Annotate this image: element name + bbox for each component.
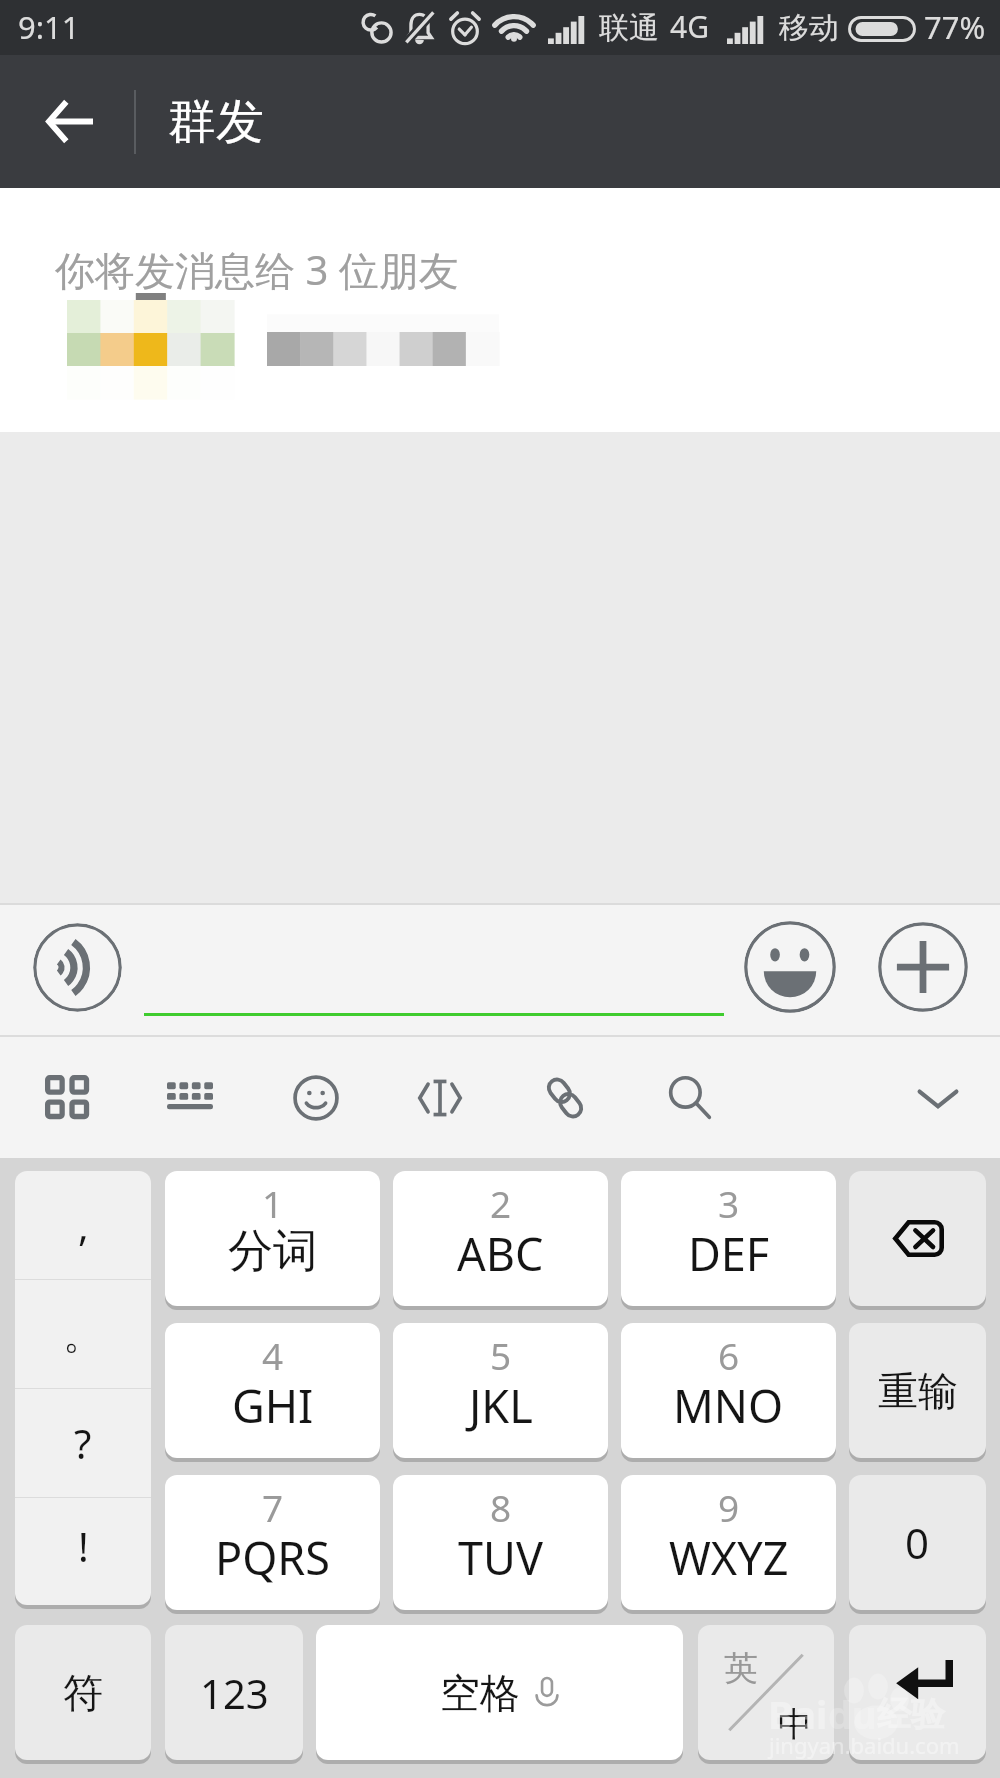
staticText: 1 [262, 1178, 284, 1228]
staticText: 3 [718, 1178, 740, 1228]
staticText: PQRS [215, 1527, 331, 1588]
button[interactable]: Keyboard [164, 1072, 216, 1124]
button[interactable]: 0 [849, 1475, 986, 1610]
staticText: 重输 [878, 1366, 958, 1416]
staticText: GHI [232, 1375, 314, 1436]
button[interactable]: 7 [165, 1475, 380, 1610]
staticText: 9 [718, 1482, 740, 1532]
button[interactable]: 1 [165, 1171, 380, 1306]
button[interactable]: Redo [849, 1323, 986, 1458]
staticText: TUV [458, 1527, 543, 1588]
staticText: 经验 [877, 1693, 945, 1736]
staticText: ABC [457, 1223, 544, 1284]
staticText: 英 [724, 1647, 758, 1690]
button[interactable]: 。 [15, 1280, 151, 1388]
staticText: JKL [469, 1375, 533, 1436]
staticText: 符 [63, 1668, 103, 1718]
staticText: 中 [778, 1703, 812, 1746]
staticText: 6 [718, 1330, 740, 1380]
button[interactable]: 2 [393, 1171, 608, 1306]
button[interactable]: Punctuation [15, 1171, 151, 1605]
staticText: 分词 [228, 1223, 318, 1280]
button[interactable]: Hide keyboard [912, 1072, 964, 1124]
button[interactable]: 9 [621, 1475, 836, 1610]
button[interactable]: 4 [165, 1323, 380, 1458]
button[interactable]: 3 [621, 1171, 836, 1306]
staticText: 123 [200, 1666, 269, 1720]
staticText: 空格 [440, 1668, 520, 1718]
staticText: 77% [924, 6, 986, 48]
button[interactable]: Search [664, 1072, 716, 1124]
staticText: jingyan.baidu.com [769, 1730, 960, 1760]
button[interactable]: ? [15, 1389, 151, 1497]
staticText: MNO [673, 1375, 784, 1436]
staticText: ! [78, 1519, 89, 1573]
staticText: , [78, 1198, 89, 1252]
staticText: 移动 [779, 9, 839, 47]
staticText: 7 [262, 1482, 284, 1532]
staticText: 4G [670, 6, 709, 47]
button[interactable]: 8 [393, 1475, 608, 1610]
button[interactable]: 5 [393, 1323, 608, 1458]
staticText: 4 [262, 1330, 284, 1380]
button[interactable]: Symbols [15, 1625, 151, 1760]
staticText: 。 [63, 1309, 103, 1359]
staticText: ? [74, 1416, 92, 1470]
staticText: 9:11 [18, 6, 80, 48]
staticText: WXYZ [669, 1527, 789, 1588]
staticText: 5 [490, 1330, 512, 1380]
button[interactable]: Voice input [33, 923, 122, 1012]
button[interactable]: Emoji [290, 1072, 342, 1124]
button[interactable]: Clipboard [539, 1072, 591, 1124]
button[interactable]: Move cursor [414, 1072, 466, 1124]
button[interactable]: ! [15, 1498, 151, 1605]
staticText: 群发 [168, 92, 264, 152]
button[interactable]: Backspace [849, 1171, 986, 1306]
button[interactable]: Switch input language [698, 1625, 834, 1760]
button[interactable]: 123 [165, 1625, 303, 1760]
staticText: 2 [490, 1178, 512, 1228]
button[interactable]: , [15, 1171, 151, 1279]
staticText: DEF [688, 1223, 770, 1284]
staticText: Bai [768, 1688, 828, 1740]
button[interactable]: Layouts [42, 1072, 94, 1124]
button[interactable]: Emoji [744, 921, 836, 1013]
button[interactable]: Space [316, 1625, 683, 1760]
staticText: du [828, 1688, 877, 1740]
staticText: 0 [905, 1514, 930, 1571]
staticText: 你将发消息给 3 位朋友 [55, 242, 459, 297]
staticText: 联通 [599, 9, 659, 47]
button[interactable]: More options [878, 922, 968, 1012]
button[interactable]: Enter [849, 1625, 986, 1760]
button[interactable]: Back [0, 55, 128, 188]
staticText: 8 [490, 1482, 512, 1532]
button[interactable]: 6 [621, 1323, 836, 1458]
